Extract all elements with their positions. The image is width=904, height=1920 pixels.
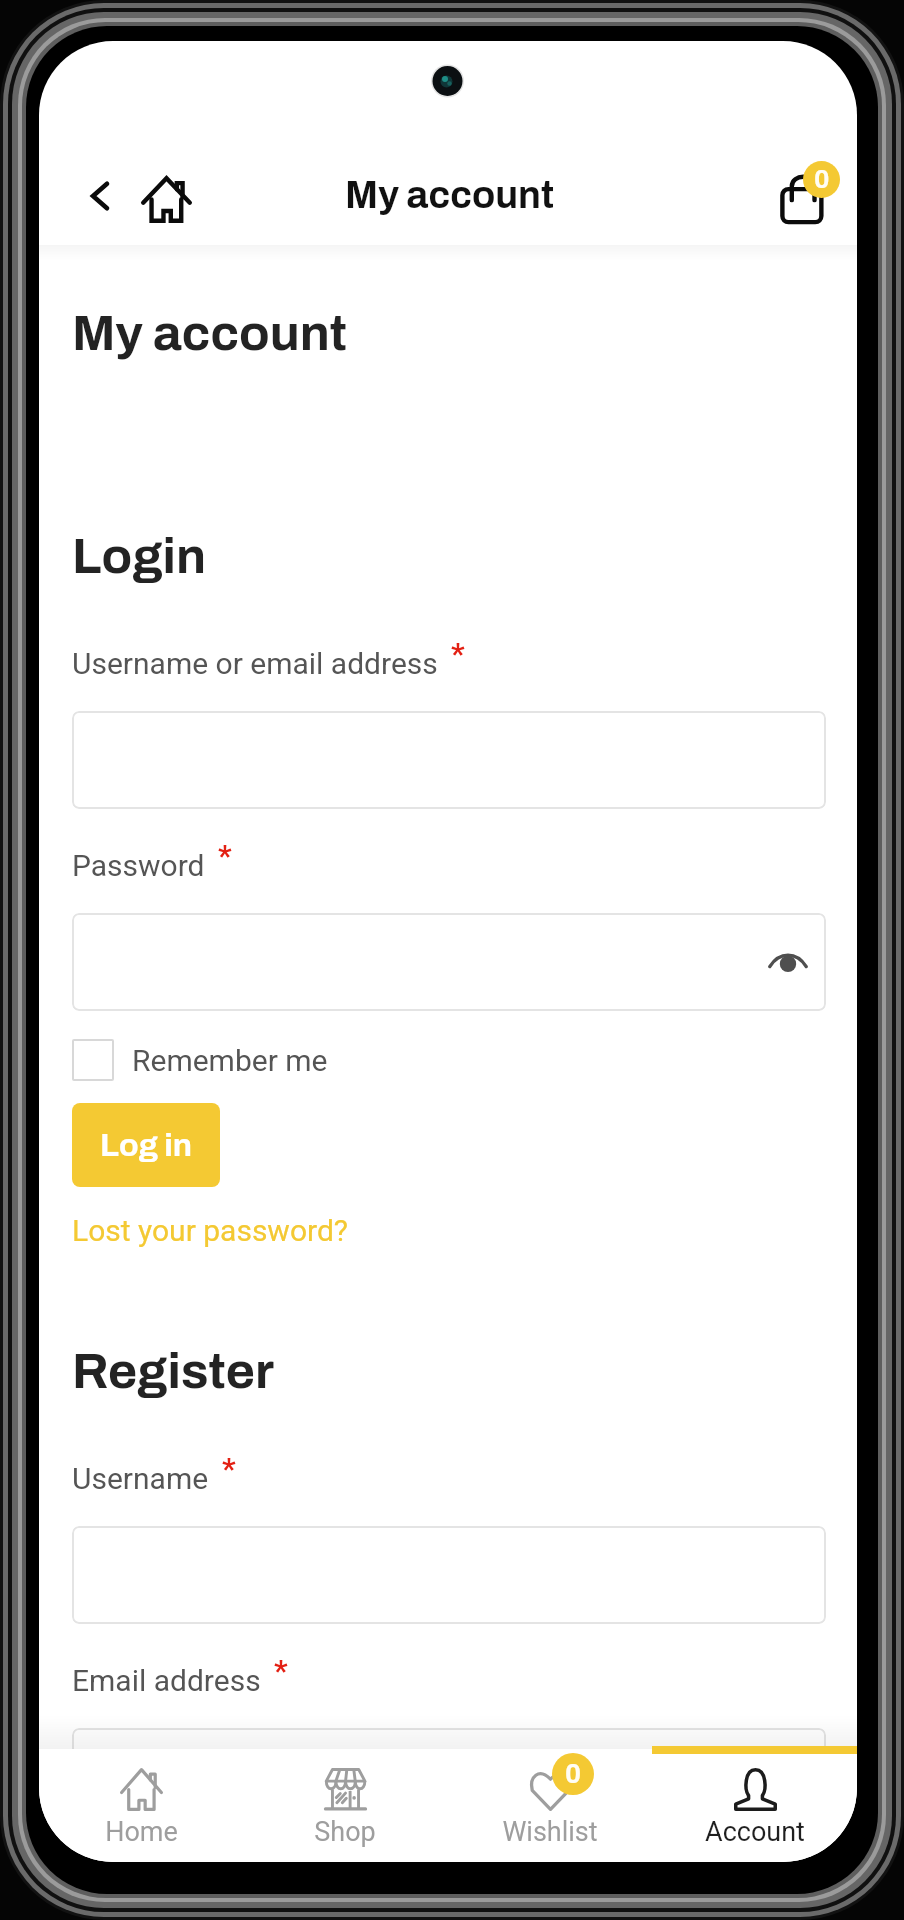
- button[interactable]: [72, 1728, 826, 1826]
- button[interactable]: Show password: [72, 913, 826, 1011]
- button[interactable]: Lost your password?: [72, 1213, 349, 1248]
- staticText: Login: [72, 529, 206, 583]
- staticText: Home: [105, 1816, 178, 1848]
- staticText: Register: [72, 1344, 274, 1398]
- staticText: Account: [705, 1816, 805, 1848]
- staticText: 0: [814, 165, 830, 193]
- button[interactable]: [72, 711, 826, 809]
- button[interactable]: Log in: [72, 1103, 220, 1187]
- staticText: Username or email address: [72, 646, 438, 681]
- button[interactable]: Cart: [769, 162, 837, 230]
- staticText: *: [451, 636, 465, 671]
- staticText: Username: [72, 1461, 209, 1496]
- button[interactable]: Shop: [243, 1749, 447, 1848]
- staticText: *: [218, 838, 232, 873]
- staticText: Remember me: [132, 1043, 328, 1078]
- staticText: *: [274, 1653, 288, 1688]
- staticText: Email address: [72, 1663, 261, 1698]
- button[interactable]: Home: [39, 1749, 243, 1848]
- staticText: Wishlist: [502, 1816, 598, 1848]
- staticText: Password: [72, 848, 205, 883]
- button[interactable]: Remember me: [72, 1039, 328, 1081]
- staticText: Log in: [100, 1128, 193, 1163]
- button[interactable]: Show password: [764, 938, 812, 986]
- button[interactable]: [72, 1526, 826, 1624]
- staticText: 0: [565, 1759, 582, 1788]
- button[interactable]: Back: [74, 170, 126, 222]
- staticText: My account: [72, 306, 347, 360]
- staticText: *: [222, 1451, 236, 1486]
- button[interactable]: 0: [447, 1749, 652, 1848]
- staticText: Shop: [314, 1816, 376, 1848]
- staticText: My account: [345, 175, 554, 216]
- button[interactable]: Account: [652, 1749, 857, 1848]
- button[interactable]: Home: [137, 167, 195, 225]
